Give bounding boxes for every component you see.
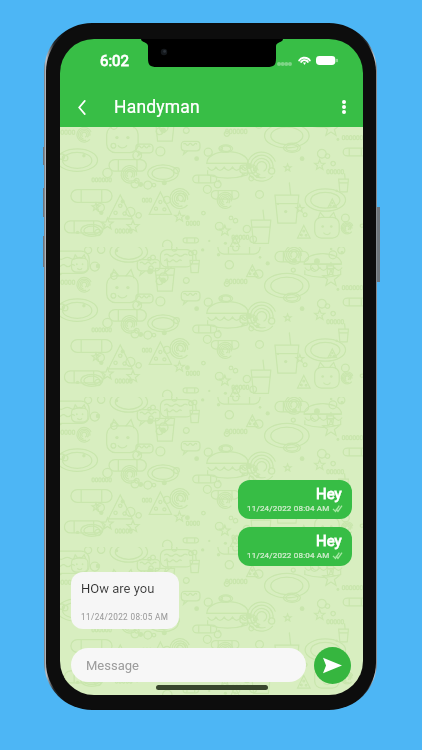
staticText: Hey [316,485,342,503]
staticText: 11/24/2022 08:05 AM [81,612,169,622]
button[interactable]: Hey [238,527,352,566]
button[interactable]: More options [327,90,361,124]
staticText: Hey [316,532,342,550]
staticText: HOw are you [81,581,155,596]
button[interactable]: Message [71,648,306,682]
button[interactable]: Send [314,647,351,684]
staticText: 11/24/2022 08:04 AM [247,504,330,513]
button[interactable]: Hey [238,480,352,519]
button[interactable]: HOw are you [71,572,179,629]
staticText: 6:02 [100,52,129,70]
staticText: Handyman [114,97,200,118]
staticText: Message [86,658,139,673]
button[interactable]: Back [65,90,99,124]
staticText: 11/24/2022 08:04 AM [247,551,330,560]
